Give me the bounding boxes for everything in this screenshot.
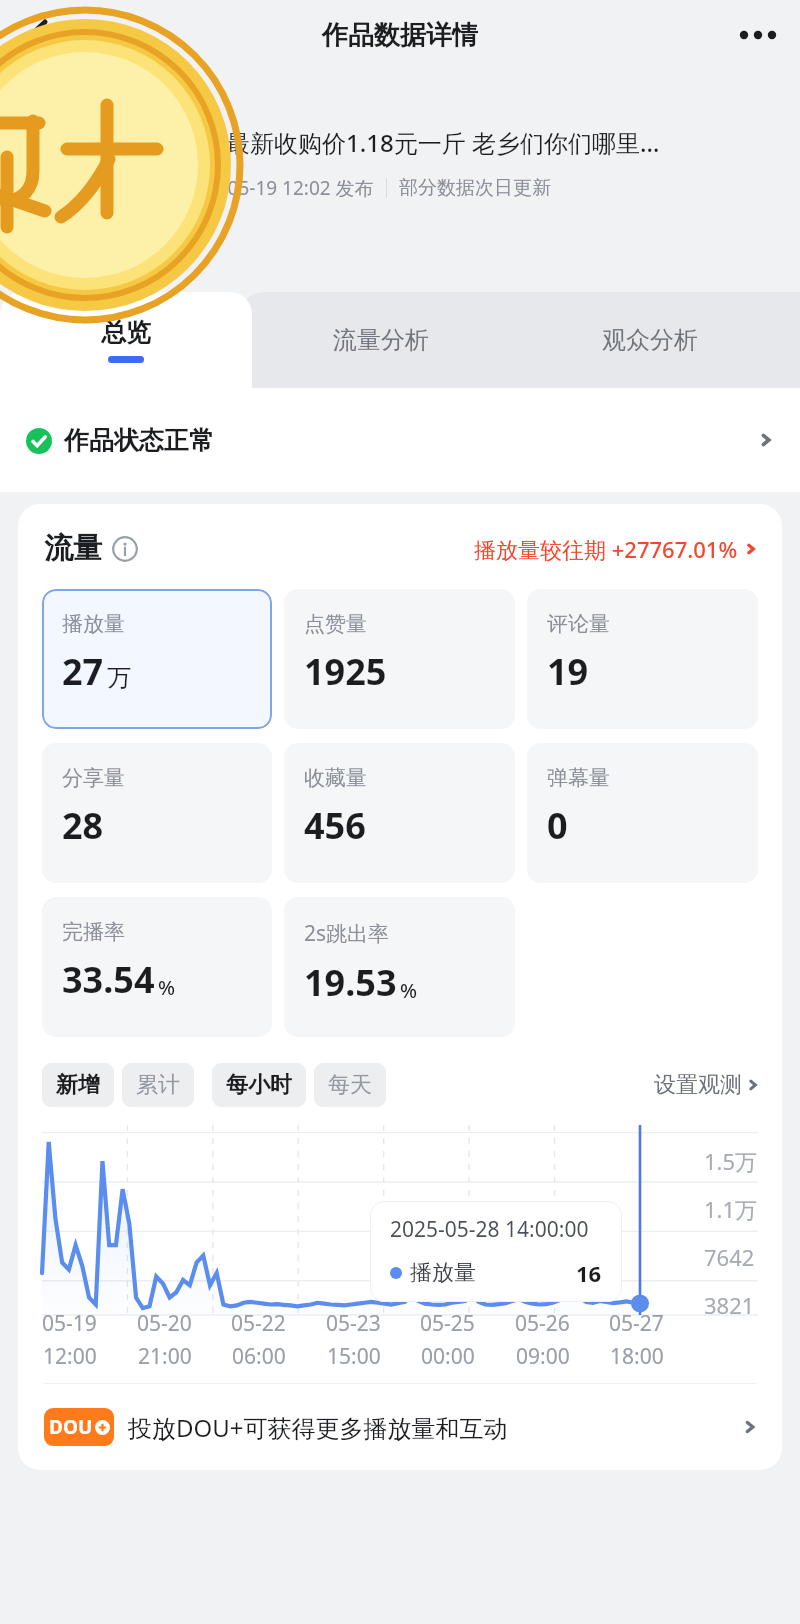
staticText: 新增 xyxy=(56,1071,100,1099)
button[interactable]: 完播率 xyxy=(42,897,272,1037)
button[interactable]: 点赞量 xyxy=(284,589,515,729)
button[interactable]: 播放量 xyxy=(42,589,272,729)
staticText: 万 xyxy=(107,663,131,693)
staticText: 05-26 xyxy=(515,1309,570,1338)
staticText: 累计 xyxy=(136,1071,180,1099)
staticText: 2025-05-28 14:00:00 xyxy=(390,1215,589,1244)
staticText: DOU xyxy=(49,1414,93,1440)
staticText: 总览 xyxy=(101,317,151,348)
staticText: 3821 xyxy=(704,1290,755,1320)
button[interactable]: 收藏量 xyxy=(284,743,515,883)
button[interactable]: 2s跳出率 xyxy=(284,897,515,1037)
staticText: 27 xyxy=(62,647,104,696)
staticText: 投放DOU+可获得更多播放量和互动 xyxy=(128,1411,508,1444)
staticText: 00:00 xyxy=(421,1342,475,1371)
staticText: 12:00 xyxy=(43,1342,97,1371)
staticText: 2025-05-19 12:02 发布 xyxy=(178,175,374,201)
button[interactable]: 弹幕量 xyxy=(527,743,758,883)
staticText: 05-22 xyxy=(231,1309,286,1338)
staticText: 09:00 xyxy=(516,1342,570,1371)
staticText: 播放量 xyxy=(410,1259,476,1287)
staticText: 456 xyxy=(304,801,366,850)
staticText: 每小时 xyxy=(226,1071,292,1099)
button[interactable]: More options xyxy=(734,11,782,59)
staticText: 播放量 xyxy=(62,611,125,637)
button[interactable]: 切换作品 xyxy=(20,253,126,278)
staticText: 1925 xyxy=(304,647,387,696)
staticText: 05-25 xyxy=(420,1309,475,1338)
staticText: 0 xyxy=(547,801,568,850)
staticText: 7642 xyxy=(704,1242,755,1272)
button[interactable]: Info xyxy=(112,536,138,562)
staticText: 流量 xyxy=(44,530,102,567)
button[interactable]: 每天 xyxy=(314,1063,386,1107)
staticText: 05-19 xyxy=(42,1309,97,1338)
staticText: 观众分析 xyxy=(602,325,698,355)
button[interactable]: 每小时 xyxy=(212,1063,306,1107)
staticText: 05-20 xyxy=(137,1309,192,1338)
staticText: 评论量 xyxy=(547,611,610,637)
staticText: 每天 xyxy=(328,1071,372,1099)
staticText: 16 xyxy=(576,1258,602,1288)
staticText: 作品状态正常 xyxy=(64,425,214,456)
staticText: 部分数据次日更新 xyxy=(399,176,551,200)
staticText: 设置观测 xyxy=(654,1071,742,1099)
button[interactable]: 评论量 xyxy=(527,589,758,729)
staticText: 18:00 xyxy=(610,1342,664,1371)
staticText: 05-27 xyxy=(609,1309,664,1338)
button[interactable]: 总览 xyxy=(0,292,252,388)
staticText: 切换作品 xyxy=(20,253,100,278)
button[interactable]: 累计 xyxy=(122,1063,194,1107)
staticText: 28 xyxy=(62,801,104,850)
staticText: 播放量较往期 +27767.01% xyxy=(474,534,738,564)
staticText: 流量分析 xyxy=(333,325,429,355)
staticText: 19 xyxy=(547,647,589,696)
staticText: 1.1万 xyxy=(704,1194,758,1224)
staticText: 19.53 xyxy=(304,958,397,1007)
button[interactable]: 设置观测 xyxy=(654,1071,758,1099)
staticText: 15:00 xyxy=(327,1342,381,1371)
staticText: 分享量 xyxy=(62,765,125,791)
button[interactable]: Back xyxy=(14,11,62,59)
staticText: 1.5万 xyxy=(704,1146,758,1176)
button[interactable]: 新增 xyxy=(42,1063,114,1107)
staticText: % xyxy=(158,974,176,1001)
staticText: 完播率 xyxy=(62,919,125,945)
staticText: 06:00 xyxy=(232,1342,286,1371)
staticText: 小麦最新收购价1.18元一斤 老乡们你们哪里… xyxy=(178,126,660,159)
staticText: 21:00 xyxy=(138,1342,192,1371)
button[interactable]: 播放量较往期 +27767.01% xyxy=(474,534,756,564)
staticText: 作品数据详情 xyxy=(322,19,478,52)
button[interactable]: DOU xyxy=(18,1384,782,1470)
button[interactable]: 作品状态正常 xyxy=(0,388,800,492)
button[interactable]: 分享量 xyxy=(42,743,272,883)
staticText: % xyxy=(400,977,418,1004)
staticText: 33.54 xyxy=(62,955,155,1004)
staticText: 弹幕量 xyxy=(547,765,610,791)
button[interactable]: 流量分析 xyxy=(252,292,510,388)
staticText: 收藏量 xyxy=(304,765,367,791)
button[interactable]: 观众分析 xyxy=(510,292,790,388)
staticText: 点赞量 xyxy=(304,611,367,637)
staticText: 05-23 xyxy=(326,1309,381,1338)
staticText: 2s跳出率 xyxy=(304,919,390,948)
